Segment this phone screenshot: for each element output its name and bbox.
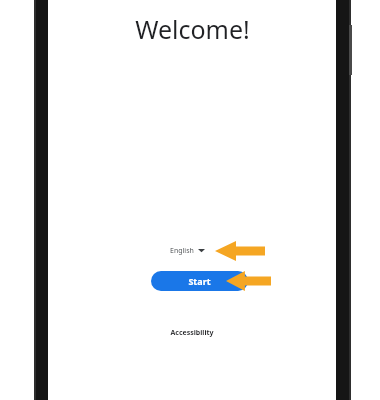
staticText: English xyxy=(170,246,194,256)
staticText: Welcome! xyxy=(135,12,250,46)
staticText: Accessibility xyxy=(170,328,214,338)
button[interactable]: Accessibility xyxy=(48,326,336,340)
staticText: Start xyxy=(188,275,211,287)
button[interactable]: English xyxy=(168,243,207,258)
button[interactable]: Start xyxy=(151,271,248,291)
